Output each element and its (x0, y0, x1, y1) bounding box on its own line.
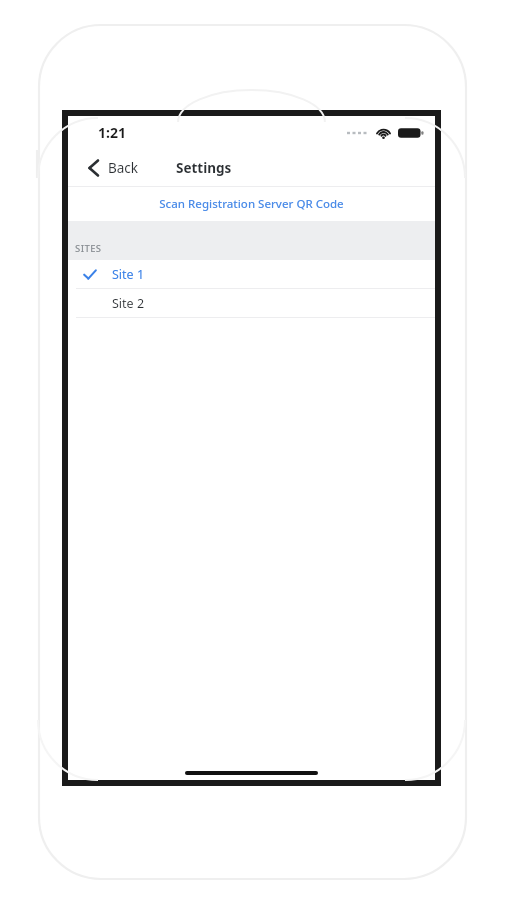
staticText: Scan Registration Server QR Code (159, 196, 344, 212)
other: Back (88, 159, 99, 177)
staticText: SITES (75, 242, 102, 255)
button[interactable]: Scan Registration Server QR Code (68, 187, 435, 221)
staticText: Settings (176, 159, 232, 177)
staticText: Site 2 (112, 295, 145, 312)
other: Selected (83, 269, 97, 280)
button[interactable]: Selected (68, 260, 435, 288)
button[interactable]: Site 2 (68, 289, 435, 317)
staticText: 1:21 (98, 123, 126, 142)
button[interactable]: Back (68, 153, 149, 183)
staticText: Back (108, 159, 139, 177)
staticText: Site 1 (112, 266, 145, 283)
